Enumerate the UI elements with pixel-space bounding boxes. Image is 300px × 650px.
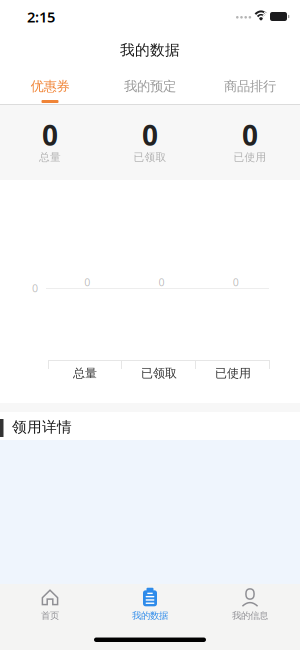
staticText: 我的信息 <box>232 610 268 621</box>
staticText: 0 <box>233 275 239 289</box>
staticText: 已使用 <box>215 366 251 381</box>
staticText: 领用详情 <box>12 418 72 436</box>
staticText: 已领取 <box>133 150 166 164</box>
staticText: 2:15 <box>27 7 55 26</box>
staticText: 0 <box>42 116 58 154</box>
staticText: 已使用 <box>233 150 266 164</box>
staticText: 商品排行 <box>224 78 276 94</box>
button[interactable]: 商品排行 <box>200 68 300 104</box>
staticText: 首页 <box>41 610 59 621</box>
button[interactable]: 首页 <box>0 588 100 621</box>
staticText: 0 <box>84 275 90 289</box>
button[interactable]: 我的预定 <box>100 68 200 104</box>
staticText: 我的数据 <box>132 610 168 621</box>
staticText: 已领取 <box>141 366 177 381</box>
staticText: 总量 <box>73 366 97 381</box>
staticText: 0 <box>142 116 158 154</box>
staticText: 我的数据 <box>120 41 180 59</box>
staticText: 0 <box>158 275 164 289</box>
staticText: 优惠券 <box>30 78 69 94</box>
button[interactable]: 我的信息 <box>200 588 300 621</box>
staticText: 0 <box>32 281 38 295</box>
staticText: 总量 <box>39 150 61 164</box>
button[interactable]: 优惠券 <box>0 68 100 104</box>
staticText: 0 <box>242 116 258 154</box>
button[interactable]: 我的数据 <box>100 588 200 621</box>
staticText: 我的预定 <box>124 78 176 94</box>
